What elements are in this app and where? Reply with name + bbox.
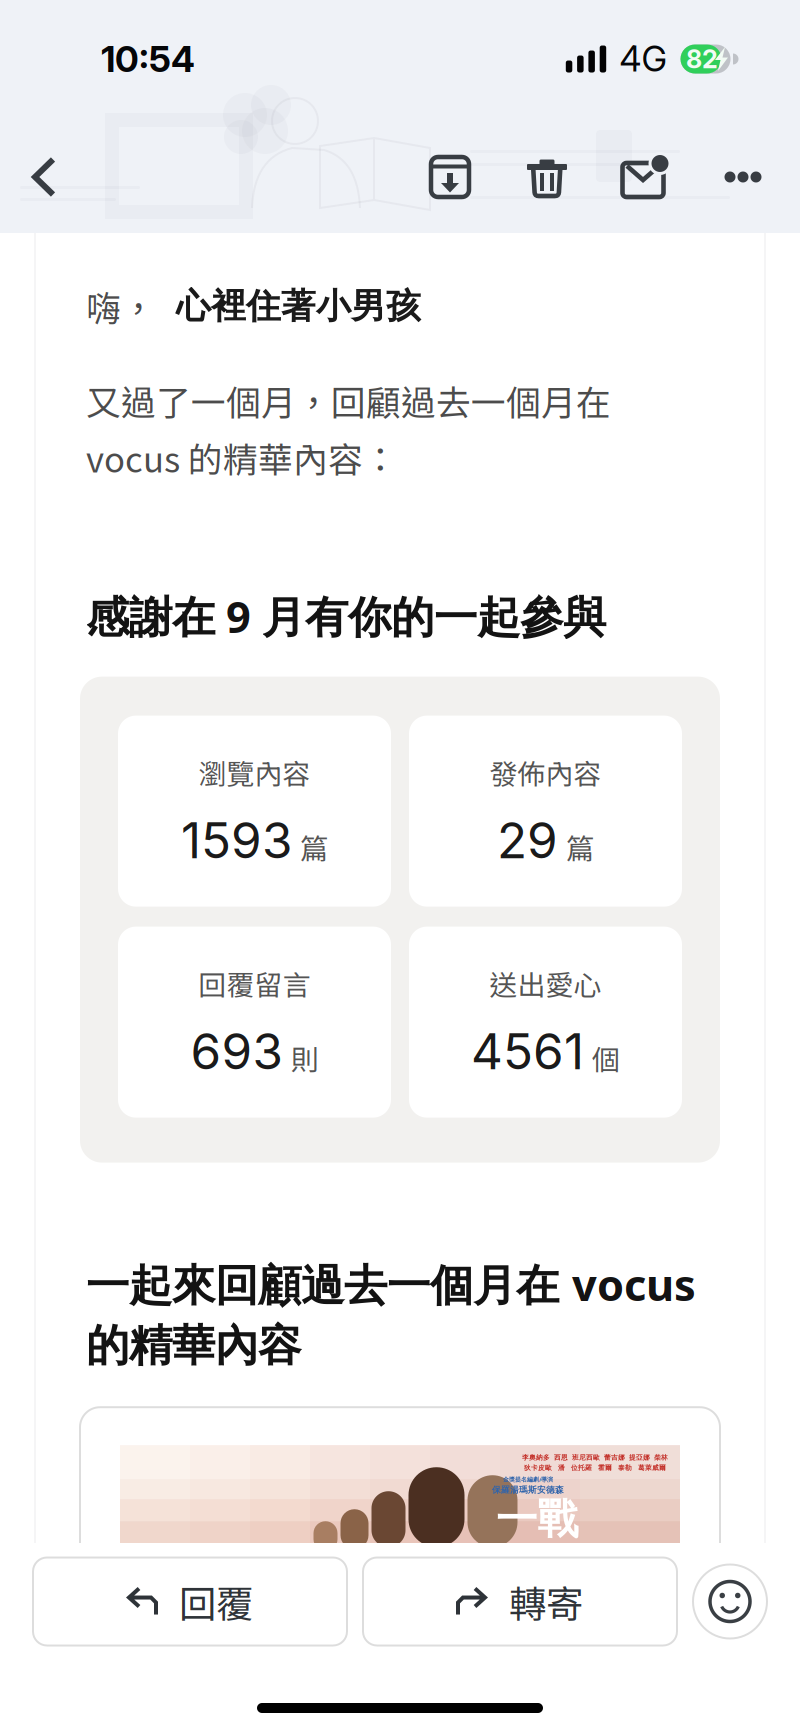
staticText: 的精華內容 xyxy=(86,1319,301,1373)
staticText: 個 xyxy=(592,1038,620,1078)
button[interactable]: Mark as unread xyxy=(358,100,442,233)
staticText: 李奧納多 西恩 班尼西歐 蕾吉娜 提亞娜 柴林 xyxy=(522,1453,668,1462)
staticText: 感謝在 9 月有你的一起參與 xyxy=(86,587,606,646)
staticText: 一戰 xyxy=(496,1493,578,1545)
button[interactable]: Back xyxy=(358,100,442,233)
staticText: 發佈內容 xyxy=(489,752,601,792)
staticText: 又過了一個月，回顧過去一個月在 xyxy=(86,375,611,425)
staticText: vocus 的精華內容： xyxy=(86,432,398,483)
button[interactable]: Add reaction xyxy=(693,1564,767,1638)
button[interactable]: More options xyxy=(358,100,442,233)
staticText: 篇 xyxy=(566,827,594,867)
staticText: 4G xyxy=(619,38,667,80)
staticText: 則 xyxy=(290,1038,318,1078)
staticText: 心裡住著小男孩 xyxy=(156,284,421,328)
staticText: 回覆留言 xyxy=(198,963,310,1003)
staticText: 4561 xyxy=(471,1021,584,1081)
staticText: 瀏覽內容 xyxy=(198,752,310,792)
staticText: 保羅湯瑪斯安德森 xyxy=(492,1484,564,1495)
staticText: 狄卡皮歐 潘 位托羅 霍爾 泰勒 葛萊威爾 xyxy=(524,1464,666,1472)
button[interactable]: Archive xyxy=(358,100,442,233)
staticText: 轉寄 xyxy=(509,1574,583,1629)
staticText: 29 xyxy=(497,810,558,870)
staticText: 嗨， xyxy=(86,281,156,331)
staticText: 一起來回顧過去一個月在 vocus xyxy=(86,1255,696,1314)
staticText: 10:54 xyxy=(101,37,195,81)
staticText: 回覆 xyxy=(179,1574,253,1629)
staticText: 693 xyxy=(190,1021,282,1081)
button[interactable]: Delete xyxy=(358,100,442,233)
button[interactable]: 轉寄 xyxy=(363,1557,677,1645)
button[interactable]: 回覆 xyxy=(33,1557,347,1645)
staticText: 送出愛心 xyxy=(489,963,601,1003)
staticText: 金獎提名編劇/導演 xyxy=(503,1475,553,1483)
staticText: 82 xyxy=(686,44,718,74)
staticText: 篇 xyxy=(300,827,328,867)
staticText: 1593 xyxy=(181,810,292,870)
